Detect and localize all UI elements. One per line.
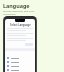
button[interactable]	[7, 60, 33, 64]
staticText: Instant Switching, One Click	[3, 9, 35, 12]
staticText: Translation	[3, 12, 16, 15]
staticText: Language	[3, 2, 30, 9]
button[interactable]	[7, 56, 33, 60]
staticText: Select Language	[10, 23, 31, 27]
button[interactable]	[7, 64, 33, 68]
button[interactable]	[7, 68, 33, 72]
